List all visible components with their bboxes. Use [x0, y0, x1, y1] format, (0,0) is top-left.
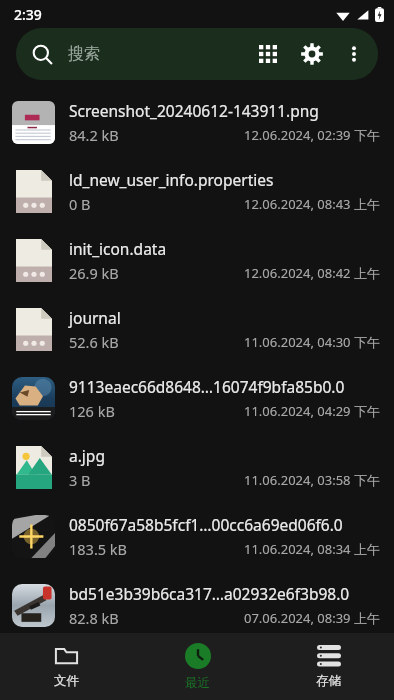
staticText: 12.06.2024, 08:42 上午 — [244, 264, 380, 282]
staticText: 26.9 kB — [69, 263, 119, 283]
staticText: 11.06.2024, 08:34 上午 — [244, 540, 380, 558]
staticText: 12.06.2024, 08:43 上午 — [244, 195, 380, 213]
staticText: 183.5 kB — [69, 539, 127, 559]
staticText: 12.06.2024, 02:39 下午 — [244, 126, 380, 144]
staticText: bd51e3b39b6ca317…a02932e6f3b98.0 — [69, 583, 350, 604]
staticText: 搜索 — [68, 44, 100, 64]
button[interactable]: 0850f67a58b5fcf1…00cc6a69ed06f6.0 — [0, 502, 394, 571]
staticText: 126 kB — [69, 401, 115, 421]
staticText: 0850f67a58b5fcf1…00cc6a69ed06f6.0 — [69, 514, 343, 535]
staticText: 84.2 kB — [69, 125, 119, 145]
staticText: 52.6 kB — [69, 332, 119, 352]
button[interactable]: More options — [334, 34, 374, 74]
button[interactable]: Screenshot_20240612-143911.png — [0, 88, 394, 157]
button[interactable]: 搜索 — [16, 28, 378, 80]
staticText: 最近 — [185, 675, 210, 691]
button[interactable]: 最近 — [132, 633, 263, 700]
staticText: init_icon.data — [69, 238, 167, 259]
button[interactable]: 9113eaec66d8648…16074f9bfa85b0.0 — [0, 364, 394, 433]
staticText: 3 B — [69, 470, 91, 490]
staticText: 9113eaec66d8648…16074f9bfa85b0.0 — [69, 376, 345, 397]
staticText: 文件 — [54, 673, 79, 689]
staticText: ld_new_user_info.properties — [69, 169, 274, 190]
staticText: 11.06.2024, 04:30 下午 — [244, 333, 380, 351]
staticText: 2:39 — [14, 5, 42, 24]
button[interactable]: 存储 — [263, 633, 394, 700]
button[interactable]: a.jpg — [0, 433, 394, 502]
button[interactable]: bd51e3b39b6ca317…a02932e6f3b98.0 — [0, 571, 394, 640]
button[interactable]: 文件 — [0, 633, 132, 700]
staticText: a.jpg — [69, 445, 105, 466]
staticText: 11.06.2024, 03:58 下午 — [244, 471, 380, 489]
staticText: Screenshot_20240612-143911.png — [69, 100, 319, 121]
staticText: 0 B — [69, 194, 91, 214]
button[interactable]: init_icon.data — [0, 226, 394, 295]
staticText: journal — [69, 307, 121, 328]
button[interactable]: Settings — [290, 32, 334, 76]
staticText: 存储 — [316, 673, 341, 689]
staticText: 11.06.2024, 04:29 下午 — [244, 402, 380, 420]
staticText: 07.06.2024, 08:39 上午 — [244, 609, 380, 627]
button[interactable]: Grid view — [246, 32, 290, 76]
button[interactable]: ld_new_user_info.properties — [0, 157, 394, 226]
staticText: 82.8 kB — [69, 608, 119, 628]
button[interactable]: journal — [0, 295, 394, 364]
